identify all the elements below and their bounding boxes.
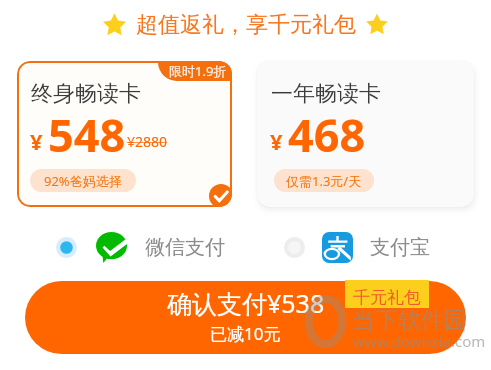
staticText: 一年畅读卡 [271, 80, 381, 108]
staticText: 微信支付 [145, 235, 225, 260]
other: WeChat Pay [96, 232, 127, 263]
staticText: 超值返礼，享千元礼包 [136, 11, 356, 39]
staticText: 548 [48, 104, 126, 165]
staticText: 限时1.9折 [169, 62, 227, 80]
button[interactable]: 确认支付¥538 [25, 281, 466, 354]
button[interactable]: 一年畅读卡 [257, 61, 474, 207]
staticText: 终身畅读卡 [31, 80, 141, 108]
button[interactable]: Alipay [284, 232, 430, 263]
staticText: ¥ [270, 126, 283, 156]
button[interactable]: WeChat Pay [56, 232, 225, 263]
staticText: 已减10元 [210, 322, 281, 345]
staticText: 468 [288, 104, 366, 165]
staticText: 确认支付¥538 [167, 286, 325, 320]
other: Alipay [322, 232, 353, 263]
other: Selected [209, 184, 232, 207]
staticText: 当下软件园 [352, 306, 467, 335]
staticText: ¥ [30, 126, 43, 156]
staticText: 仅需1.3元/天 [286, 172, 362, 190]
staticText: 92%爸妈选择 [44, 172, 122, 190]
staticText: ¥2880 [127, 132, 168, 151]
staticText: 支付宝 [370, 235, 430, 260]
staticText: 千元礼包 [353, 287, 421, 308]
button[interactable]: 限时1.9折 [17, 61, 232, 207]
staticText: www.downxia.com [353, 331, 486, 351]
